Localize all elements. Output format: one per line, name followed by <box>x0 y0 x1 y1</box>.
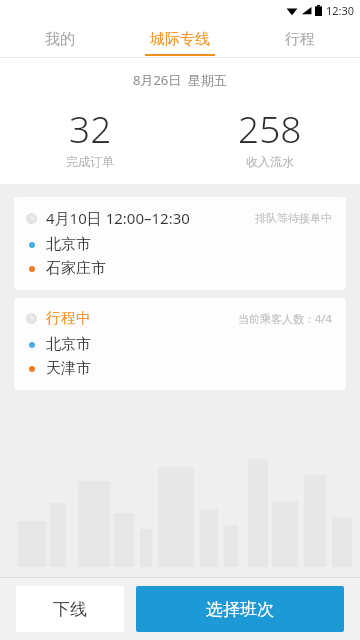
staticText: 4月10日 12:00–12:30 <box>46 208 190 228</box>
button[interactable]: 我的 <box>0 20 120 58</box>
staticText: 我的 <box>45 30 75 49</box>
staticText: 8月26日 星期五 <box>133 71 228 89</box>
staticText: 石家庄市 <box>46 259 106 278</box>
button[interactable]: 选择班次 <box>136 586 344 632</box>
staticText: 当前乘客人数：4/4 <box>238 311 332 326</box>
staticText: 行程中 <box>46 309 91 328</box>
other: Time <box>26 213 37 224</box>
button[interactable]: 下线 <box>16 586 124 632</box>
staticText: 选择班次 <box>206 599 274 620</box>
button[interactable]: Time <box>14 197 346 290</box>
button[interactable]: 行程 <box>240 20 360 58</box>
staticText: 收入流水 <box>246 154 294 169</box>
staticText: 排队等待接单中 <box>255 211 332 225</box>
staticText: 天津市 <box>46 359 91 378</box>
staticText: 完成订单 <box>66 154 114 169</box>
staticText: 北京市 <box>46 335 91 354</box>
other: Time <box>26 313 37 324</box>
staticText: 北京市 <box>46 235 91 254</box>
staticText: 32 <box>69 103 112 153</box>
staticText: 258 <box>238 103 302 153</box>
button[interactable]: Time <box>14 298 346 390</box>
staticText: 行程 <box>285 30 315 49</box>
staticText: 城际专线 <box>150 30 210 49</box>
button[interactable]: 城际专线 <box>120 20 240 58</box>
staticText: 下线 <box>53 599 87 620</box>
staticText: 12:30 <box>326 3 355 18</box>
